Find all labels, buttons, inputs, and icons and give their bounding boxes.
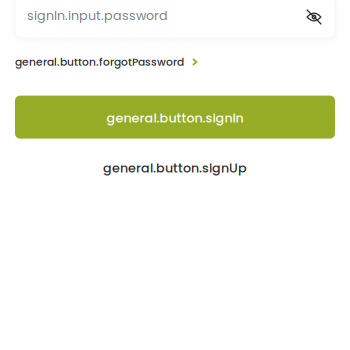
staticText: signIn.input.password [27,7,168,24]
staticText: general.button.signUp [103,159,247,177]
staticText: general.button.forgotPassword [15,54,184,69]
button[interactable]: general.button.forgotPassword [15,54,215,70]
staticText: general.button.signIn [106,109,243,127]
button[interactable]: general.button.signUp [0,157,350,179]
button[interactable]: general.button.signIn [15,96,335,139]
button[interactable]: Show password [305,9,323,25]
